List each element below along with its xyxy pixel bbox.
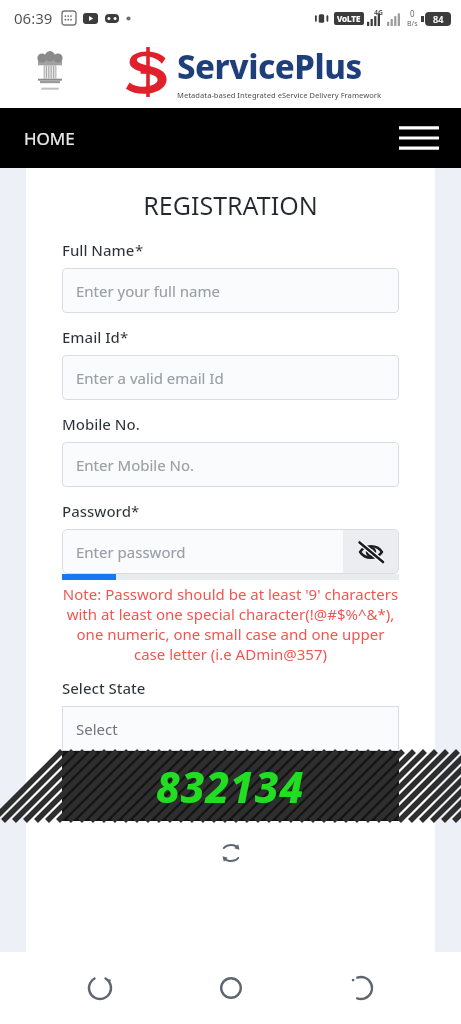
staticText: B/s	[407, 19, 418, 29]
button[interactable]: Show password	[343, 529, 399, 574]
staticText: *	[120, 327, 129, 347]
button[interactable]: Enter Mobile No.	[62, 442, 399, 487]
staticText: 84	[433, 13, 444, 25]
staticText: Enter password	[76, 542, 186, 562]
staticText: VoLTE	[337, 13, 361, 24]
staticText: Enter your full name	[76, 281, 220, 301]
staticText: Select State	[62, 678, 146, 698]
staticText: HOME	[24, 127, 75, 150]
staticText: 0	[410, 8, 415, 19]
staticText: Note: Password should be at least '9' ch…	[60, 584, 401, 664]
button[interactable]: Refresh captcha	[26, 843, 435, 863]
staticText: 06:39	[14, 8, 53, 28]
button[interactable]: Enter password	[62, 529, 343, 574]
staticText: Email Id	[62, 327, 120, 347]
staticText: 4G	[374, 8, 384, 18]
staticText: *	[131, 501, 140, 521]
staticText: REGISTRATION	[26, 188, 435, 222]
staticText: Password	[62, 501, 131, 521]
staticText: Full Name	[62, 240, 135, 260]
staticText: Enter a valid email Id	[76, 368, 224, 388]
button[interactable]: Enter your full name	[62, 268, 399, 313]
staticText: Metadata-based Integrated eService Deliv…	[177, 90, 382, 100]
staticText: Mobile No.	[62, 414, 140, 434]
button[interactable]: Back	[331, 958, 391, 1018]
button[interactable]: Menu	[391, 115, 447, 161]
staticText: Enter Mobile No.	[76, 455, 195, 475]
staticText: 832134	[156, 758, 305, 815]
button[interactable]: Home	[201, 958, 261, 1018]
staticText: *	[135, 240, 144, 260]
button[interactable]: HOME	[16, 121, 83, 156]
staticText: Select	[76, 719, 118, 739]
button[interactable]: Select	[62, 706, 399, 751]
staticText: ServicePlus	[177, 44, 362, 89]
button[interactable]: Recents	[70, 958, 130, 1018]
button[interactable]: Enter a valid email Id	[62, 355, 399, 400]
